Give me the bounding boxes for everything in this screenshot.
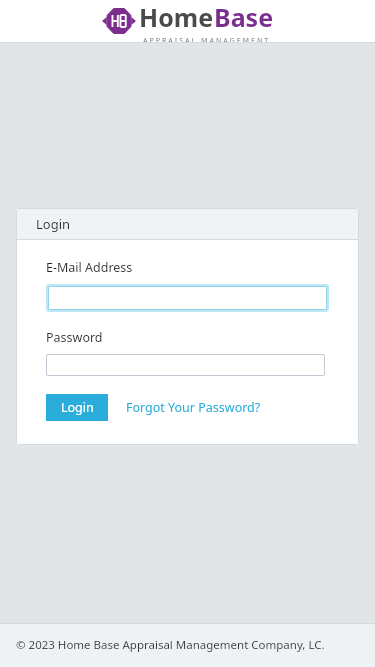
staticText: Home (139, 0, 214, 34)
staticText: Forgot Your Password? (126, 399, 261, 416)
staticText: Password (46, 329, 103, 346)
staticText: Base (214, 0, 274, 34)
button[interactable] (46, 354, 325, 376)
staticText: Login (36, 215, 71, 233)
staticText: Login (61, 399, 94, 416)
staticText: APPRAISAL MANAGEMENT (143, 35, 271, 42)
other: Home Base logo (102, 8, 136, 34)
staticText: E-Mail Address (46, 259, 133, 276)
button[interactable]: Login (46, 394, 108, 421)
staticText: © 2023 Home Base Appraisal Management Co… (16, 637, 325, 653)
button[interactable]: Forgot Your Password? (126, 399, 261, 416)
